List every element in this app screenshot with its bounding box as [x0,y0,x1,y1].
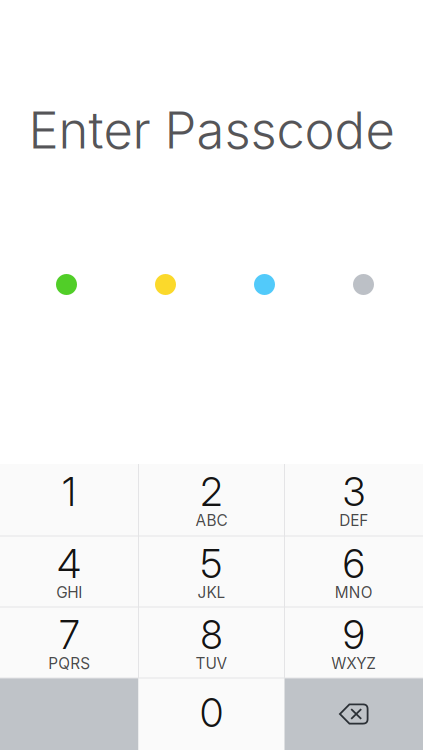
button[interactable]: 0 [138,678,284,750]
staticText: DEF [339,511,368,530]
button[interactable]: 4 [0,536,138,607]
staticText: 9 [343,612,365,658]
staticText: 7 [59,612,79,658]
staticText: GHI [56,583,82,602]
staticText: JKL [197,583,225,602]
button[interactable]: 3 [284,464,423,536]
staticText: TUV [195,654,227,673]
staticText: 2 [200,469,222,515]
button[interactable]: Delete [284,678,423,750]
staticText: 5 [200,541,222,587]
button[interactable]: 5 [138,536,284,607]
button[interactable]: 2 [138,464,284,536]
staticText: Enter Passcode [28,99,394,161]
button[interactable]: 8 [138,607,284,678]
staticText: 3 [343,469,365,515]
staticText: 6 [343,541,365,587]
staticText: 8 [200,612,222,658]
button[interactable]: 7 [0,607,138,678]
staticText: 0 [200,690,223,736]
staticText: 1 [62,469,76,515]
staticText: MNO [335,583,373,602]
button[interactable]: 9 [284,607,423,678]
staticText: WXYZ [331,654,376,673]
staticText: ABC [195,511,227,530]
button[interactable]: 6 [284,536,423,607]
staticText: 4 [57,541,81,587]
staticText: PQRS [48,654,90,673]
button[interactable]: 1 [0,464,138,536]
